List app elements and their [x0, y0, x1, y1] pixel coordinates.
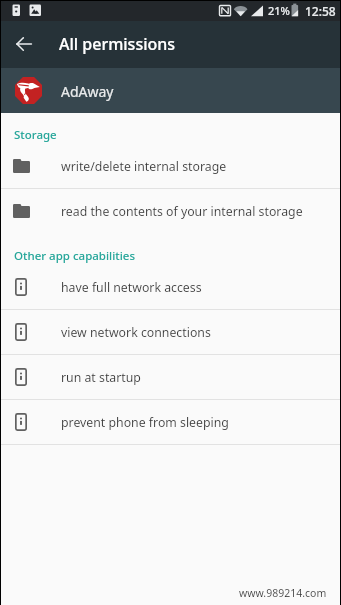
button[interactable]: prevent phone from sleeping	[0, 400, 341, 445]
button[interactable]: read the contents of your internal stora…	[0, 189, 341, 234]
staticText: 21%	[268, 3, 290, 18]
staticText: 12:58	[305, 3, 336, 19]
staticText: view network connections	[61, 324, 211, 341]
staticText: All permissions	[59, 33, 176, 55]
button[interactable]: have full network access	[0, 265, 341, 310]
staticText: have full network access	[61, 279, 202, 296]
staticText: www.989214.com	[239, 586, 327, 600]
staticText: Other app capabilities	[14, 248, 135, 264]
staticText: Storage	[14, 127, 57, 143]
staticText: read the contents of your internal stora…	[61, 203, 303, 220]
staticText: AdAway	[61, 82, 114, 101]
button[interactable]: write/delete internal storage	[0, 144, 341, 189]
staticText: write/delete internal storage	[61, 158, 227, 175]
button[interactable]: run at startup	[0, 355, 341, 400]
button[interactable]: AdAway	[0, 68, 341, 113]
staticText: run at startup	[61, 369, 141, 386]
button[interactable]: view network connections	[0, 310, 341, 355]
staticText: prevent phone from sleeping	[61, 414, 229, 431]
button[interactable]: Back	[8, 28, 40, 60]
